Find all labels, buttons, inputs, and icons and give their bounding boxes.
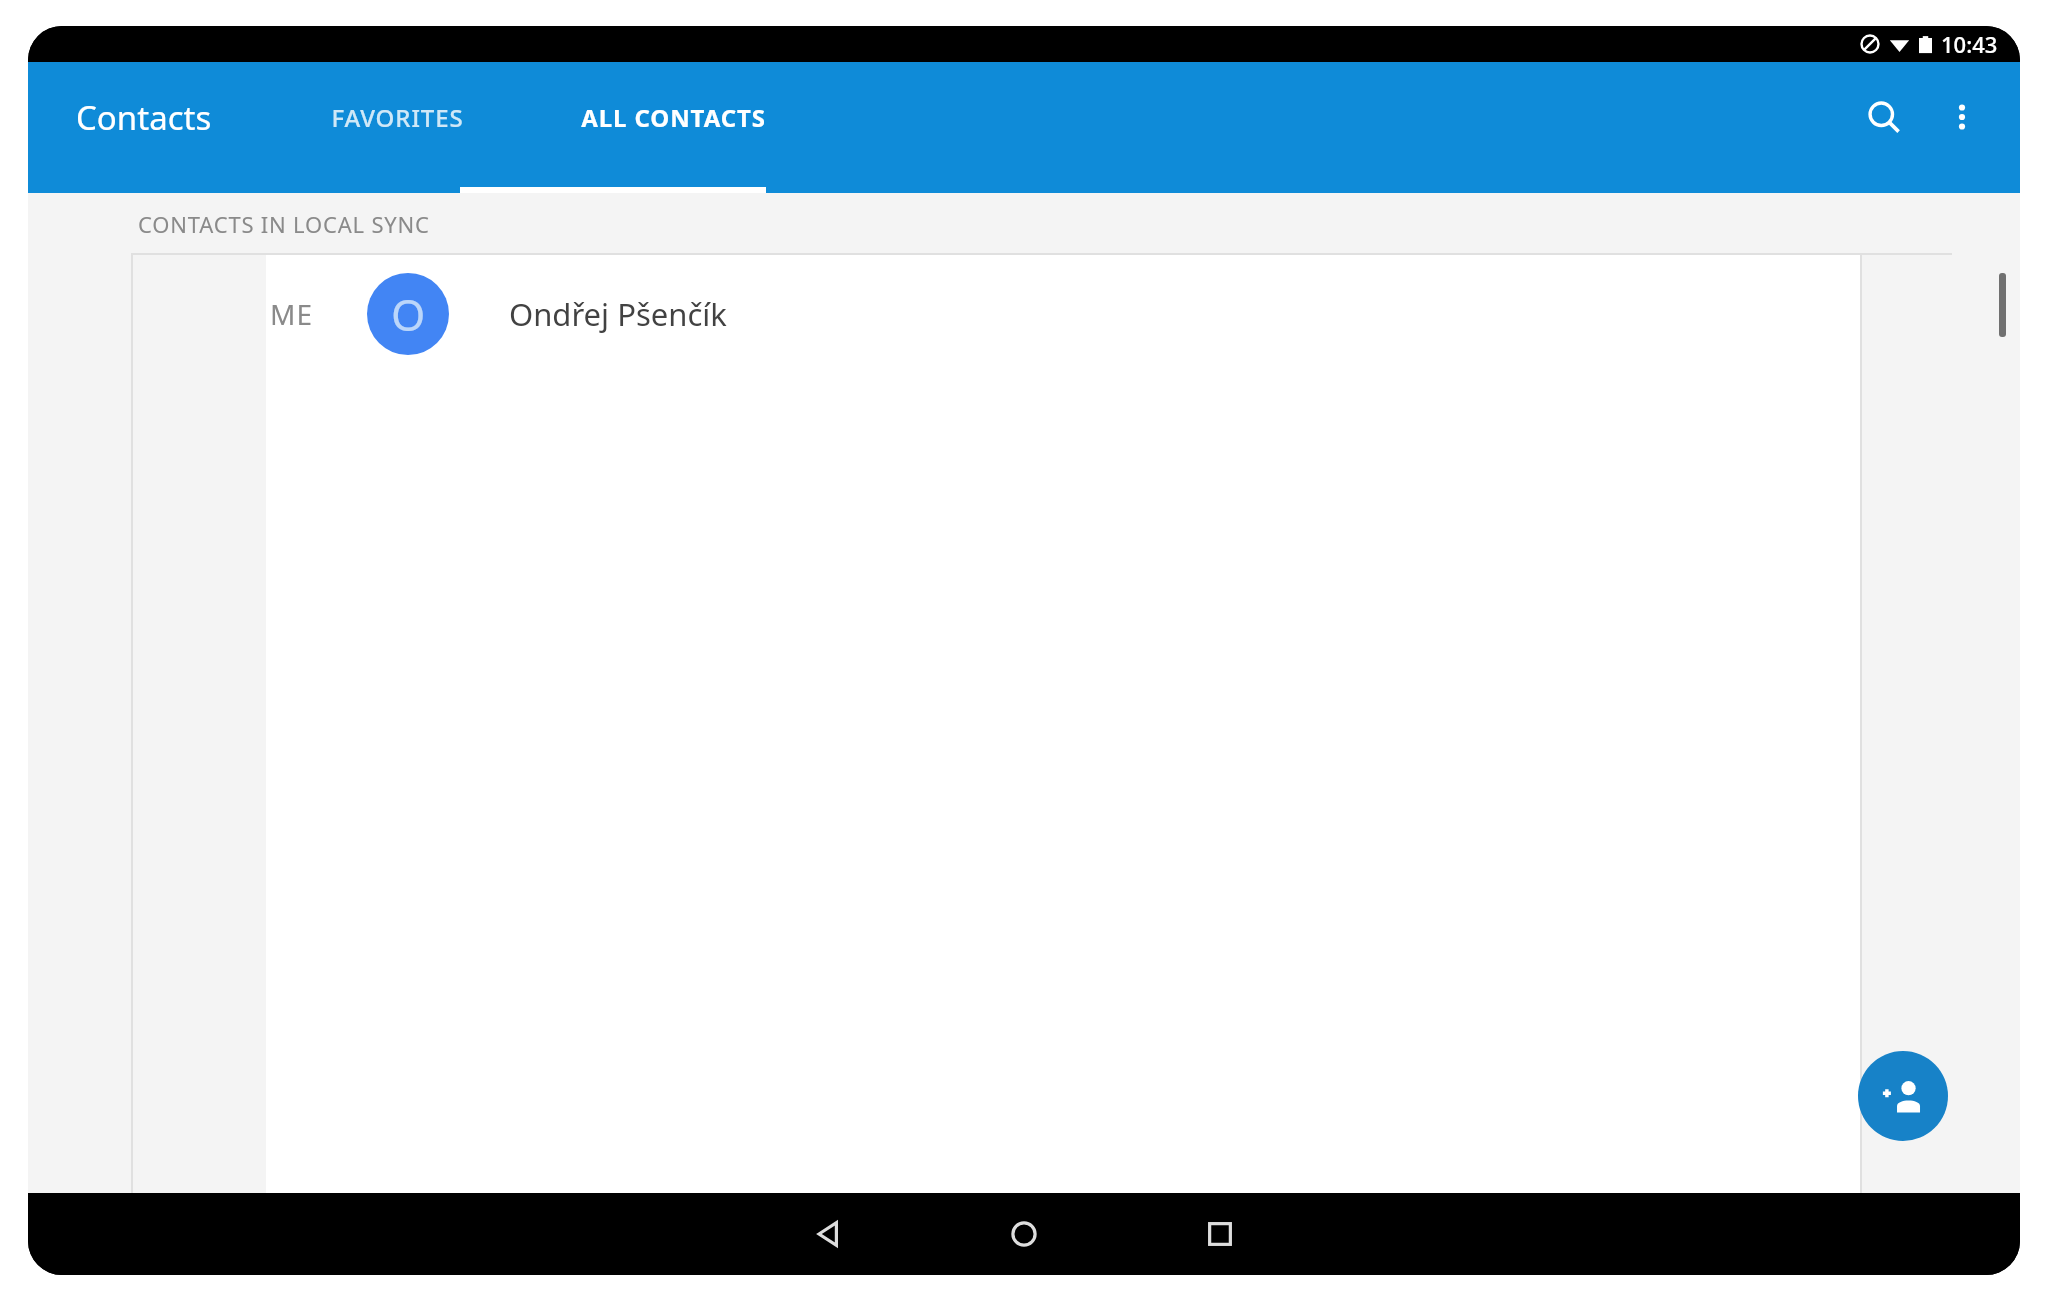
button[interactable]: Back bbox=[773, 1193, 883, 1275]
staticText: 10:43 bbox=[1941, 29, 1998, 59]
button[interactable]: Home bbox=[969, 1193, 1079, 1275]
staticText: ME bbox=[270, 295, 313, 333]
staticText: FAVORITES bbox=[331, 101, 464, 134]
button[interactable]: Recent apps bbox=[1165, 1193, 1275, 1275]
button[interactable]: FAVORITES bbox=[274, 62, 520, 172]
staticText: ALL CONTACTS bbox=[581, 101, 766, 134]
button[interactable]: ALL CONTACTS bbox=[520, 62, 826, 172]
button[interactable]: Search bbox=[1848, 81, 1920, 153]
staticText: Contacts bbox=[76, 95, 212, 140]
button[interactable]: Contacts bbox=[76, 95, 212, 140]
button[interactable]: ME bbox=[28, 255, 2020, 373]
staticText: CONTACTS IN LOCAL SYNC bbox=[138, 209, 430, 239]
button[interactable]: More options bbox=[1926, 81, 1998, 153]
staticText: O bbox=[391, 284, 426, 344]
staticText: Ondřej Pšenčík bbox=[509, 293, 727, 335]
button[interactable]: Add contact bbox=[1858, 1051, 1948, 1141]
